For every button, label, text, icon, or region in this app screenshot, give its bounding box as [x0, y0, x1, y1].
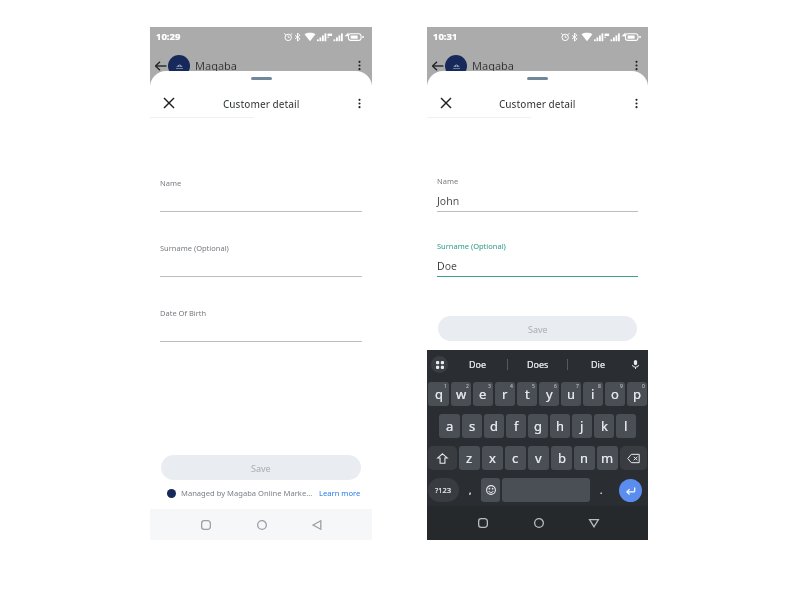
staticText: a — [446, 417, 454, 435]
button[interactable]: k — [594, 414, 614, 438]
button[interactable]: Backspace — [620, 446, 647, 470]
button[interactable]: q — [428, 382, 449, 406]
staticText: h — [556, 417, 565, 435]
button[interactable]: v — [528, 446, 549, 470]
staticText: t — [525, 385, 530, 403]
staticText: w — [456, 385, 467, 403]
button[interactable]: Home — [250, 509, 274, 540]
staticText: ?123 — [435, 485, 452, 495]
staticText: John — [437, 194, 460, 208]
button[interactable]: Learn more — [319, 488, 361, 498]
staticText: Customer detail — [499, 97, 576, 111]
button[interactable]: Recent apps — [194, 509, 218, 540]
button[interactable]: Magaba store logo — [445, 55, 467, 77]
staticText: b — [558, 449, 566, 467]
button[interactable]: c — [505, 446, 526, 470]
staticText: Save — [251, 462, 271, 474]
staticText: Doe — [437, 259, 457, 273]
staticText: z — [466, 449, 473, 467]
button[interactable]: Close — [158, 92, 180, 114]
button[interactable]: d — [484, 414, 504, 438]
button[interactable]: w — [451, 382, 471, 406]
staticText: Save — [528, 323, 548, 335]
button[interactable]: More options — [348, 92, 370, 114]
button[interactable]: o — [605, 382, 625, 406]
staticText: f — [514, 417, 519, 435]
button[interactable]: Hide keyboard — [582, 506, 606, 540]
button[interactable]: Recent apps — [471, 506, 495, 540]
button[interactable]: a — [439, 414, 460, 438]
button[interactable]: b — [551, 446, 572, 470]
button[interactable]: r — [495, 382, 515, 406]
button[interactable]: Close — [435, 92, 457, 114]
staticText: c — [512, 449, 519, 467]
button[interactable]: l — [616, 414, 636, 438]
button[interactable]: Magaba — [472, 54, 515, 76]
button[interactable]: Doe — [448, 350, 507, 378]
button[interactable]: n — [574, 446, 595, 470]
staticText: k — [601, 417, 608, 435]
staticText: Name — [160, 178, 182, 188]
button[interactable]: Magaba store logo — [168, 55, 190, 77]
staticText: x — [489, 449, 496, 467]
button[interactable]: x — [482, 446, 503, 470]
button[interactable]: t — [517, 382, 537, 406]
button[interactable]: More options — [625, 92, 647, 114]
button[interactable]: y — [539, 382, 559, 406]
button[interactable]: m — [597, 446, 618, 470]
button[interactable]: Die — [568, 350, 627, 378]
button[interactable]: s — [462, 414, 482, 438]
staticText: Managed by Magaba Online Marke… — [181, 488, 313, 498]
button[interactable]: i — [583, 382, 603, 406]
staticText: y — [546, 385, 553, 403]
button[interactable]: u — [561, 382, 581, 406]
button[interactable]: h — [550, 414, 570, 438]
staticText: 10:31 — [433, 30, 458, 43]
staticText: j — [580, 417, 584, 435]
button[interactable]: Period — [592, 478, 611, 502]
button[interactable]: z — [459, 446, 480, 470]
staticText: 2 — [466, 383, 469, 390]
button[interactable]: Back — [305, 509, 329, 540]
button[interactable]: Comma — [461, 478, 479, 502]
button[interactable]: Shift — [428, 446, 457, 470]
button[interactable]: Save — [438, 316, 637, 341]
button[interactable]: Keyboard menu — [431, 356, 448, 373]
staticText: l — [624, 417, 628, 435]
staticText: 5 — [532, 383, 535, 390]
staticText: Die — [591, 358, 605, 370]
button[interactable]: e — [473, 382, 493, 406]
button[interactable]: Enter — [619, 479, 642, 502]
button[interactable]: Does — [508, 350, 567, 378]
staticText: 0 — [642, 383, 645, 390]
button[interactable]: Emoji — [481, 478, 500, 502]
button[interactable]: p — [627, 382, 647, 406]
staticText: q — [435, 385, 443, 403]
staticText: 7 — [576, 383, 579, 390]
staticText: 8 — [598, 383, 601, 390]
button[interactable]: Back — [428, 56, 447, 75]
button[interactable]: Symbols — [428, 478, 459, 502]
button[interactable]: j — [572, 414, 592, 438]
staticText: o — [611, 385, 619, 403]
button[interactable]: Voice input — [627, 356, 644, 373]
staticText: 6 — [554, 383, 557, 390]
staticText: 1 — [444, 383, 447, 390]
button[interactable]: f — [506, 414, 526, 438]
button[interactable]: Magaba — [195, 54, 238, 76]
staticText: n — [580, 449, 589, 467]
button[interactable]: More options — [627, 56, 646, 75]
staticText: r — [502, 385, 508, 403]
button[interactable]: Back — [151, 56, 170, 75]
button[interactable]: More options — [350, 56, 369, 75]
button[interactable]: Home — [527, 506, 551, 540]
staticText: i — [591, 385, 595, 403]
button[interactable]: g — [528, 414, 548, 438]
staticText: Magaba — [472, 58, 515, 73]
staticText: Name — [437, 176, 459, 186]
button[interactable]: Save — [161, 455, 361, 480]
staticText: 10:29 — [156, 30, 181, 43]
staticText: . — [600, 484, 603, 496]
staticText: Magaba — [195, 58, 238, 73]
